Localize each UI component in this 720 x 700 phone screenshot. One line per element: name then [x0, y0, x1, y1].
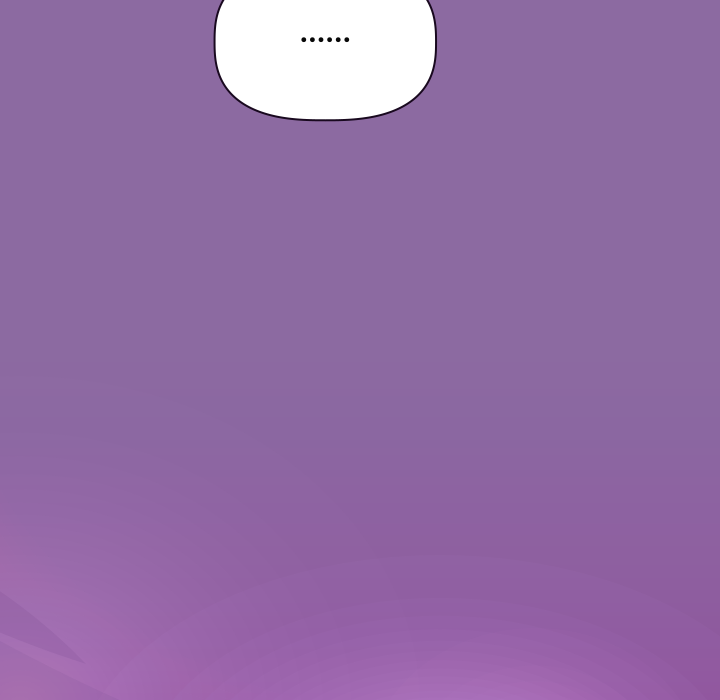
- button[interactable]: Passcode entry: [215, 0, 436, 120]
